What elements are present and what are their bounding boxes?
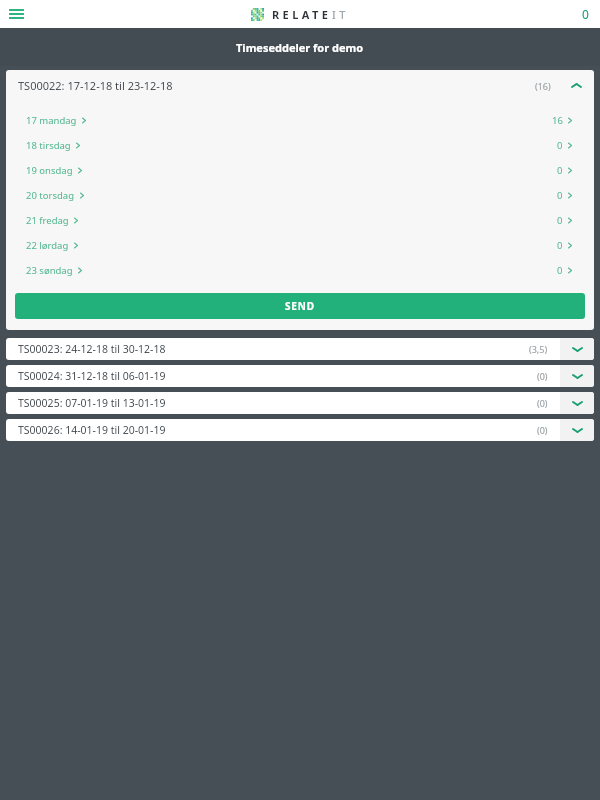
button[interactable]: SEND (15, 293, 585, 319)
staticText: 18 tirsdag (26, 139, 71, 152)
staticText: 16 (552, 114, 563, 127)
button[interactable]: TS00025: 07-01-19 til 13-01-19 (6, 392, 594, 414)
staticText: RELATE (272, 7, 332, 22)
staticText: TS00022: 17-12-18 til 23-12-18 (18, 78, 173, 93)
button[interactable]: 0 (574, 3, 596, 25)
staticText: (0) (537, 370, 548, 382)
staticText: Timeseddeler for demo (236, 40, 364, 55)
button[interactable]: TS00026: 14-01-19 til 20-01-19 (6, 419, 594, 441)
button[interactable]: 21 fredag (6, 208, 594, 233)
staticText: TS00026: 14-01-19 til 20-01-19 (18, 423, 166, 437)
button[interactable]: 23 søndag (6, 258, 594, 283)
staticText: 0 (557, 164, 563, 177)
button[interactable]: TS00023: 24-12-18 til 30-12-18 (6, 338, 594, 360)
button[interactable]: TS00022: 17-12-18 til 23-12-18 (6, 70, 594, 101)
button[interactable]: TS00024: 31-12-18 til 06-01-19 (6, 365, 594, 387)
staticText: TS00025: 07-01-19 til 13-01-19 (18, 396, 166, 410)
staticText: 0 (557, 239, 563, 252)
staticText: 21 fredag (26, 214, 69, 227)
staticText: 22 lørdag (26, 239, 69, 252)
button[interactable]: Menu (4, 2, 28, 26)
staticText: SEND (285, 299, 315, 313)
staticText: TS00023: 24-12-18 til 30-12-18 (18, 342, 166, 356)
staticText: (3,5) (529, 343, 548, 355)
staticText: 0 (557, 214, 563, 227)
button[interactable]: 17 mandag (6, 108, 594, 133)
button[interactable]: 20 torsdag (6, 183, 594, 208)
button[interactable]: 18 tirsdag (6, 133, 594, 158)
staticText: 0 (582, 6, 589, 22)
staticText: 0 (557, 139, 563, 152)
staticText: 0 (557, 189, 563, 202)
button[interactable]: 19 onsdag (6, 158, 594, 183)
button[interactable]: 22 lørdag (6, 233, 594, 258)
staticText: 20 torsdag (26, 189, 75, 202)
staticText: 19 onsdag (26, 164, 73, 177)
staticText: 23 søndag (26, 264, 73, 277)
staticText: (0) (537, 397, 548, 409)
staticText: 0 (557, 264, 563, 277)
staticText: (16) (535, 80, 551, 92)
staticText: (0) (537, 424, 548, 436)
staticText: 17 mandag (26, 114, 77, 127)
staticText: TS00024: 31-12-18 til 06-01-19 (18, 369, 166, 383)
staticText: IT (332, 7, 349, 22)
